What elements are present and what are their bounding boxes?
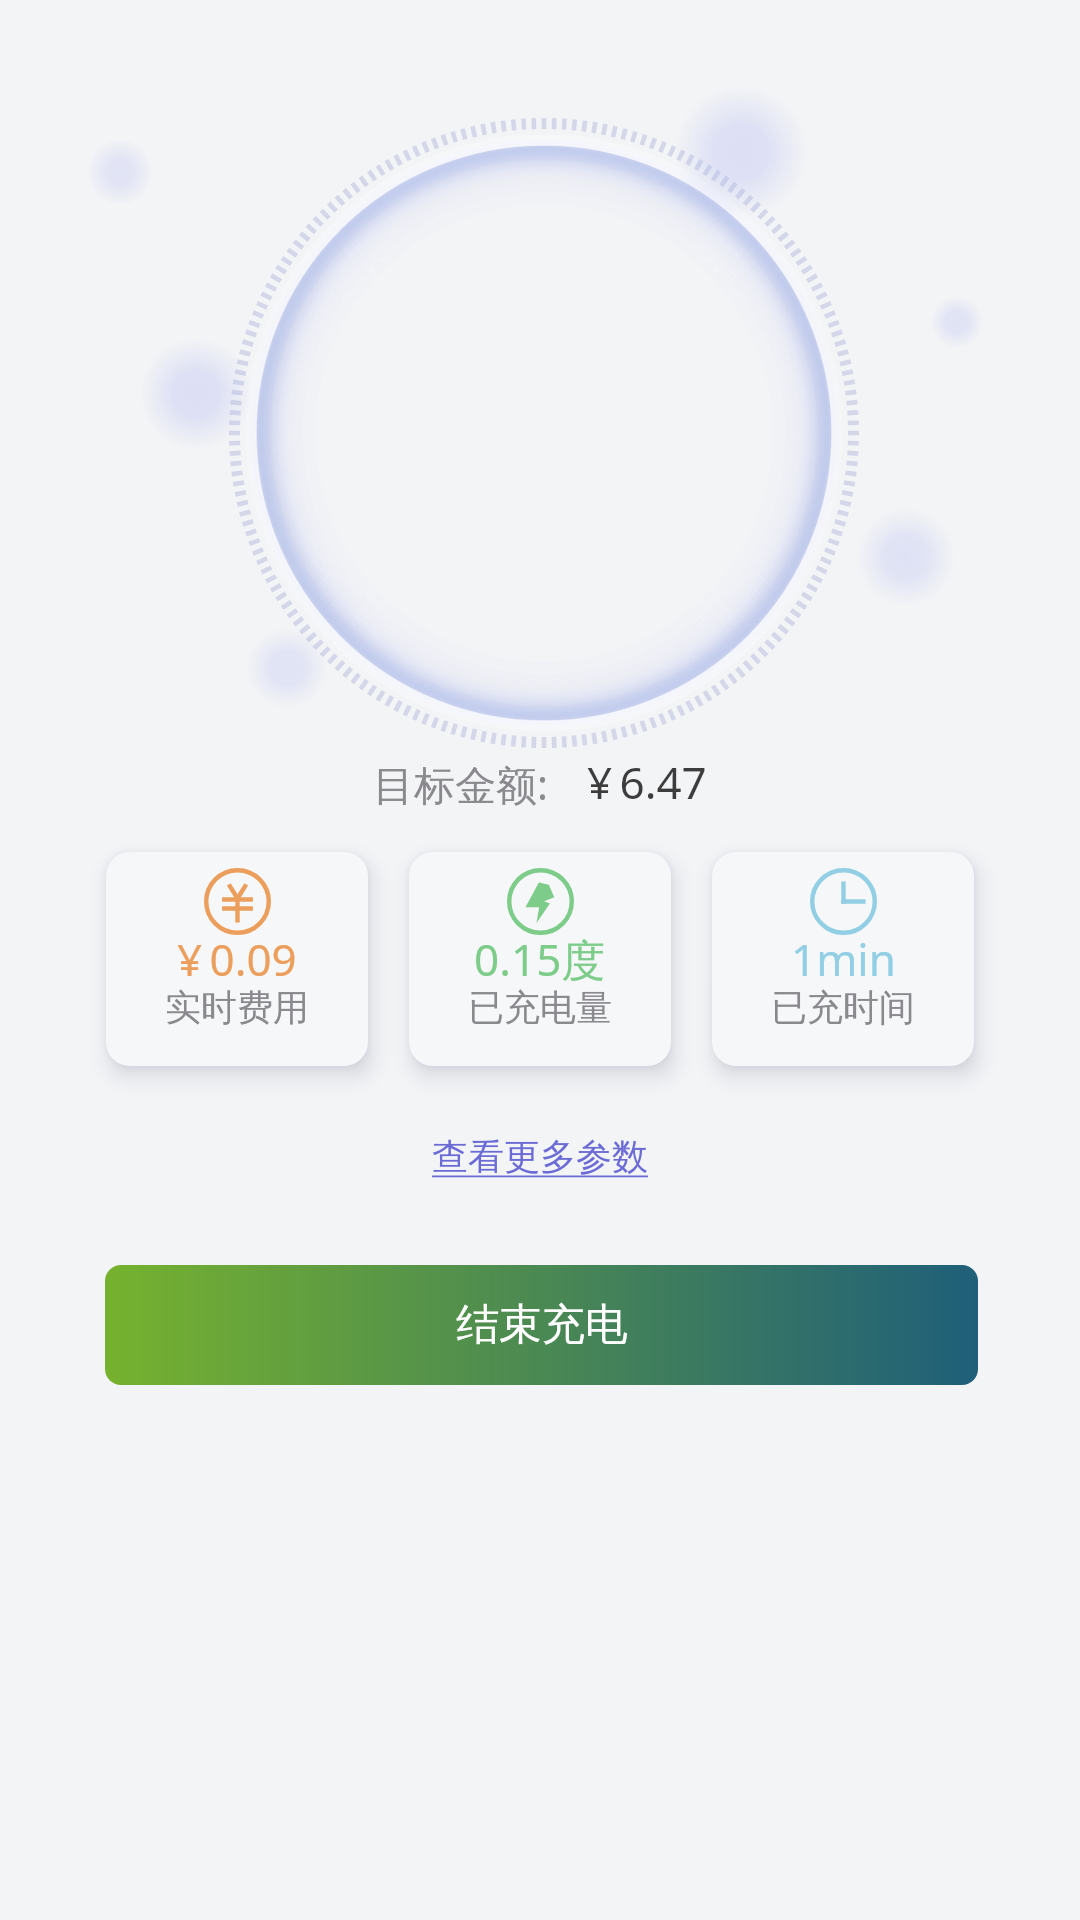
staticText: 查看更多参数 [432,1134,648,1179]
staticText: 已充电量 [468,985,612,1030]
other: 充电进度 [194,83,894,783]
staticText: 实时费用 [165,985,309,1030]
button[interactable]: 0.15度 [409,852,671,1066]
button[interactable]: 1min [712,852,974,1066]
staticText: 结束充电 [456,1298,628,1352]
staticText: 已充时间 [771,985,915,1030]
staticText: 0.15度 [474,929,606,989]
staticText: 1min [791,929,896,989]
button[interactable]: ¥ 0.09 [106,852,368,1066]
button[interactable]: 结束充电 [105,1265,978,1385]
staticText: ¥ 6.47 [587,752,707,812]
staticText: 目标金额: [373,756,548,812]
button[interactable]: 查看更多参数 [418,1124,662,1189]
staticText: ¥ 0.09 [177,929,297,989]
